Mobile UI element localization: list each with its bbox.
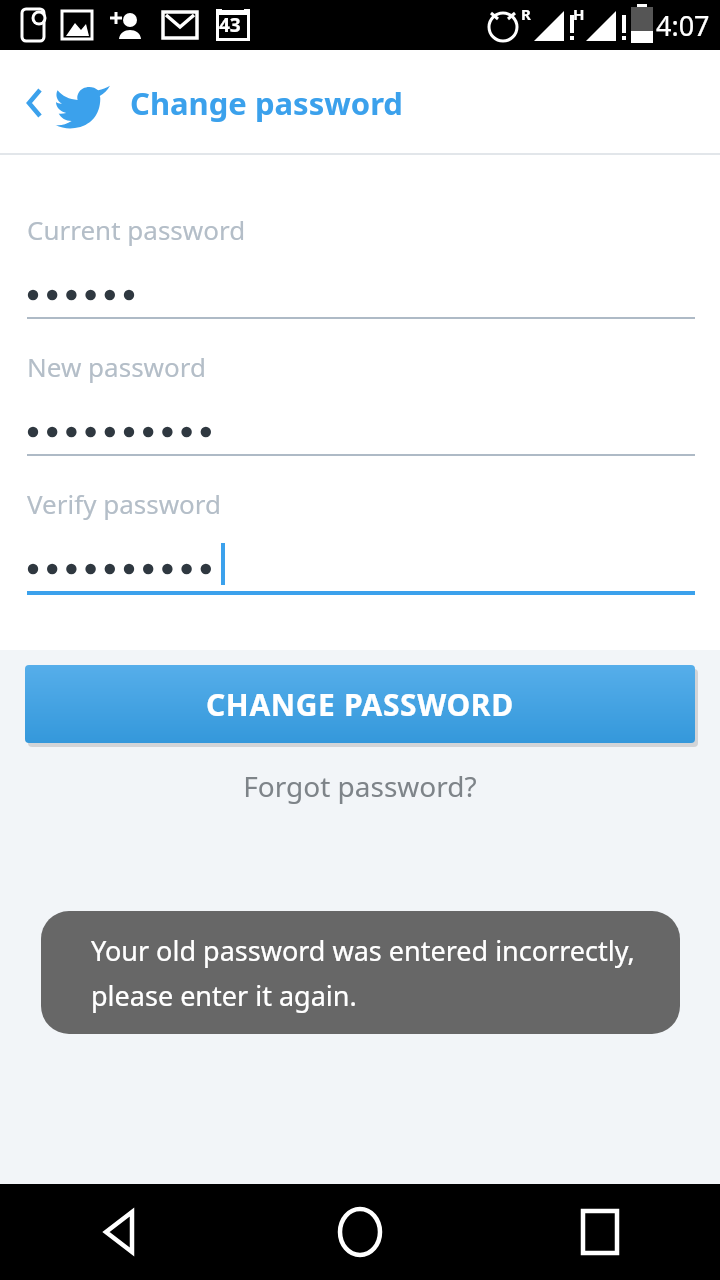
staticText: Verify password: [27, 486, 222, 521]
button[interactable]: New password: [27, 319, 695, 456]
staticText: Current password: [27, 212, 246, 247]
staticText: please enter it again.: [91, 977, 357, 1014]
staticText: Forgot password?: [243, 767, 477, 805]
button[interactable]: CHANGE PASSWORD: [25, 665, 695, 743]
staticText: H: [573, 4, 585, 24]
staticText: 43: [219, 12, 241, 38]
button[interactable]: Recent apps: [480, 1184, 720, 1280]
button[interactable]: Back: [10, 63, 54, 143]
button[interactable]: Current password: [27, 155, 695, 319]
staticText: R: [521, 4, 531, 24]
staticText: 4:07: [656, 7, 710, 44]
button[interactable]: Verify password: [27, 456, 695, 595]
button[interactable]: Home: [240, 1184, 480, 1280]
staticText: CHANGE PASSWORD: [206, 684, 514, 725]
staticText: New password: [27, 349, 206, 384]
button[interactable]: Back: [0, 1184, 240, 1280]
button[interactable]: Forgot password?: [235, 759, 485, 813]
staticText: Your old password was entered incorrectl…: [91, 932, 635, 969]
staticText: Change password: [130, 82, 403, 124]
